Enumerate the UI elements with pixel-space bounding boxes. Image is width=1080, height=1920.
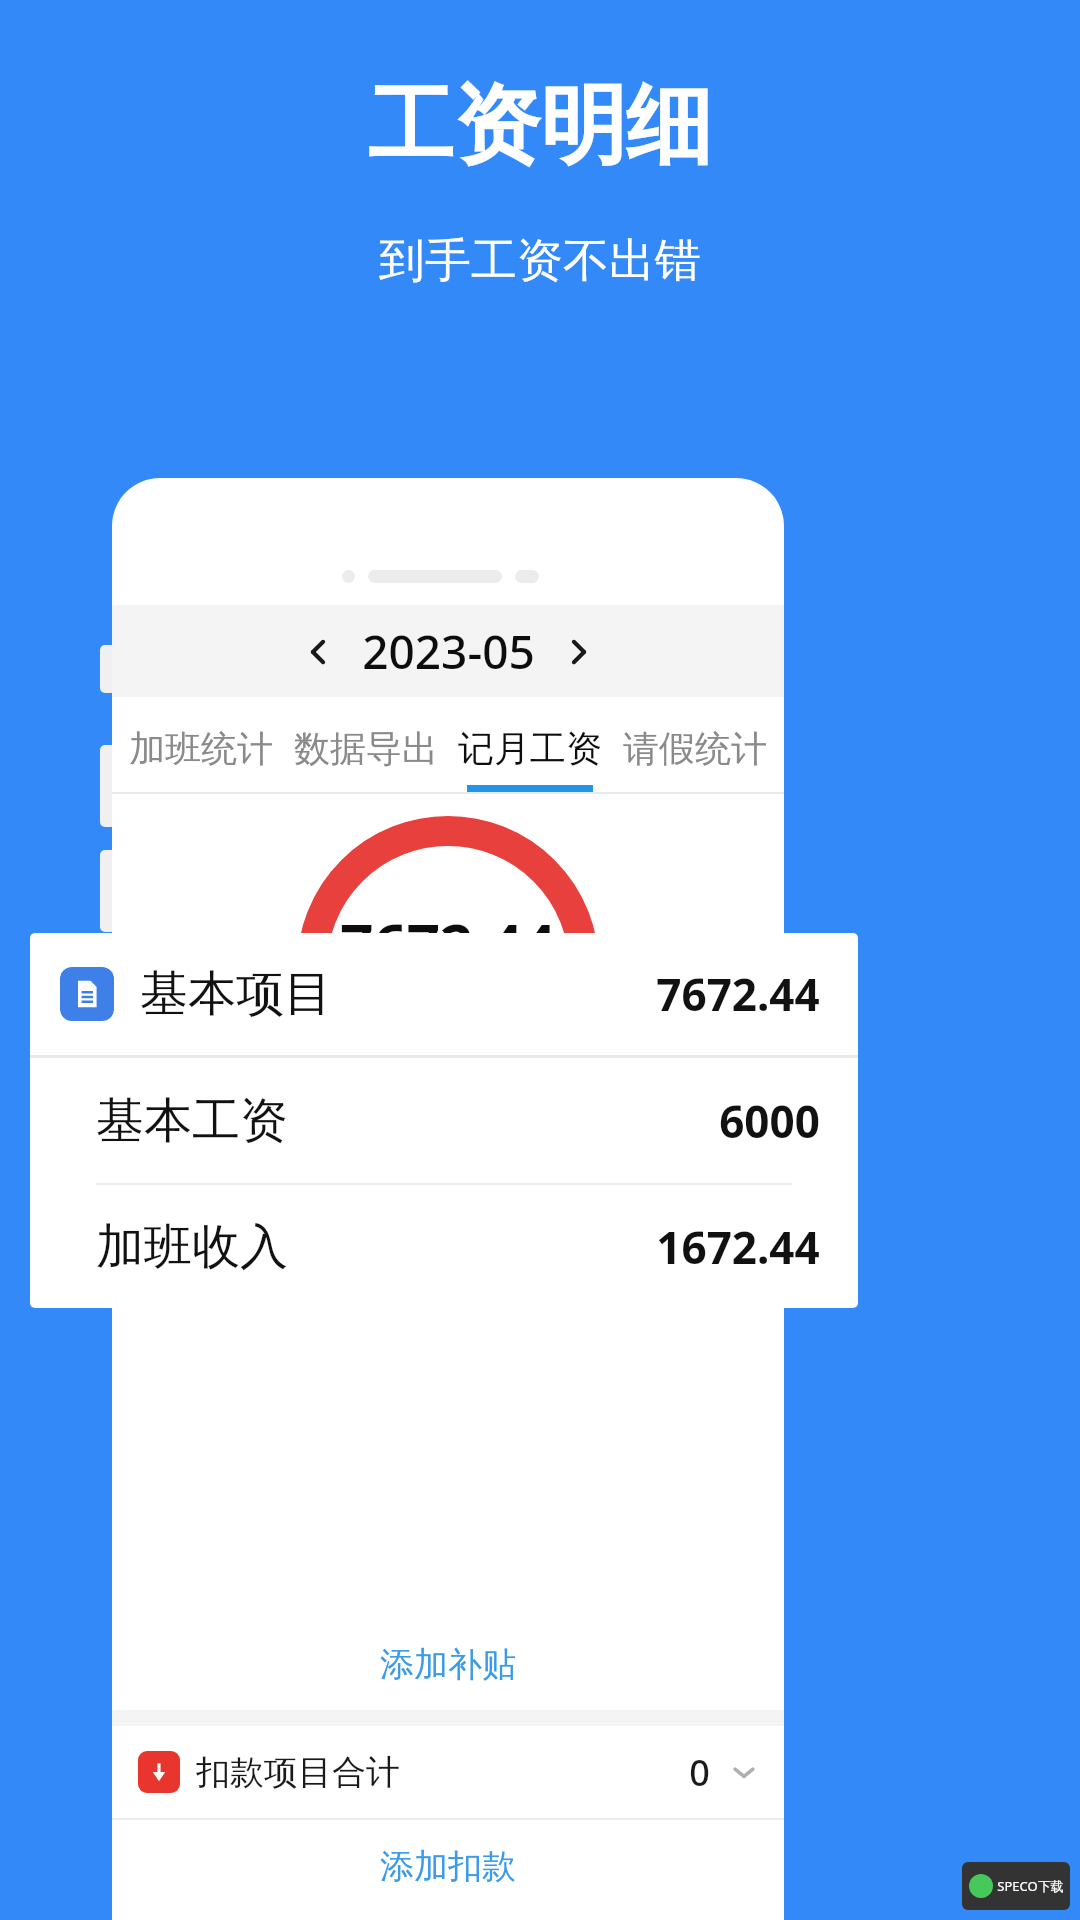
staticText: 基本工资 xyxy=(96,1091,288,1151)
button[interactable]: 加班统计 xyxy=(125,726,277,792)
staticText: 加班统计 xyxy=(129,726,273,771)
staticText: 到手工资不出错 xyxy=(379,232,701,290)
staticText: 添加扣款 xyxy=(380,1845,516,1888)
button[interactable]: Next month xyxy=(553,626,605,678)
staticText: 6000 xyxy=(719,1091,820,1151)
staticText: 加班收入 xyxy=(96,1217,288,1277)
staticText: 请假统计 xyxy=(623,726,767,771)
staticText: 基本项目 xyxy=(140,964,332,1024)
button[interactable]: 添加补贴 xyxy=(112,1618,784,1710)
staticText: SPECO下载 xyxy=(997,1877,1064,1895)
staticText: 2023-05 xyxy=(362,620,535,683)
staticText: 数据导出 xyxy=(294,726,438,771)
button[interactable]: Previous month xyxy=(292,626,344,678)
button[interactable]: 添加扣款 xyxy=(112,1820,784,1912)
button[interactable]: 基本项目 xyxy=(60,933,820,1055)
staticText: 添加补贴 xyxy=(380,1643,516,1686)
staticText: 工资明细 xyxy=(368,72,712,180)
staticText: 7672.44 xyxy=(340,904,556,983)
button[interactable]: 加班收入 xyxy=(96,1185,820,1308)
button[interactable]: 数据导出 xyxy=(290,726,442,792)
staticText: 记月工资 xyxy=(458,726,602,771)
staticText: 1672.44 xyxy=(656,1217,820,1277)
button[interactable]: 记月工资 xyxy=(454,726,606,792)
button[interactable]: 基本工资 xyxy=(96,1058,820,1183)
staticText: 扣款项目合计 xyxy=(196,1751,400,1794)
button[interactable]: 请假统计 xyxy=(619,726,771,792)
staticText: 7672.44 xyxy=(656,964,820,1024)
button[interactable]: 扣款项目合计 xyxy=(138,1726,758,1818)
staticText: 0 xyxy=(689,1748,710,1797)
